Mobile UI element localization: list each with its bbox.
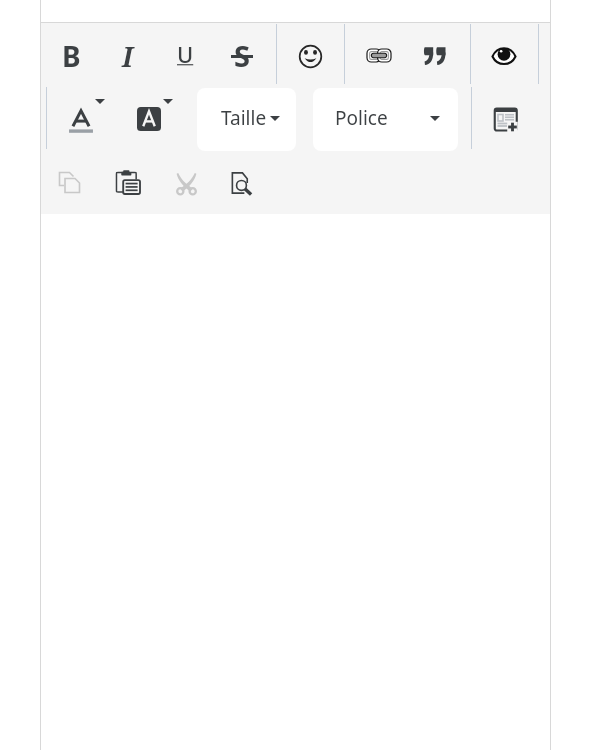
button[interactable]: Paste <box>100 151 156 213</box>
button[interactable]: Underline <box>157 23 213 85</box>
button[interactable]: Preview <box>476 25 532 87</box>
staticText: Police <box>335 105 388 131</box>
button[interactable]: Find in page <box>213 152 269 214</box>
button[interactable]: Dropdown <box>197 88 296 151</box>
staticText: S <box>234 36 250 75</box>
button[interactable]: Italic <box>99 25 155 87</box>
staticText: I <box>122 38 133 75</box>
staticText: U <box>177 39 194 69</box>
button[interactable]: Insert link <box>351 24 407 86</box>
button[interactable]: Strikethrough <box>214 24 270 86</box>
button[interactable]: Copy <box>41 151 97 213</box>
button[interactable]: Bold <box>43 25 99 87</box>
button[interactable]: Insert card <box>478 88 534 150</box>
button[interactable]: Highlight colour <box>121 88 177 150</box>
button[interactable]: Text colour <box>53 88 109 150</box>
staticText: Taille <box>221 105 267 131</box>
button[interactable]: Insert emoji <box>282 25 338 87</box>
button[interactable]: Quote <box>407 25 463 87</box>
button[interactable]: Cut <box>158 152 214 214</box>
staticText: B <box>62 37 81 75</box>
button[interactable]: Dropdown <box>313 88 458 151</box>
